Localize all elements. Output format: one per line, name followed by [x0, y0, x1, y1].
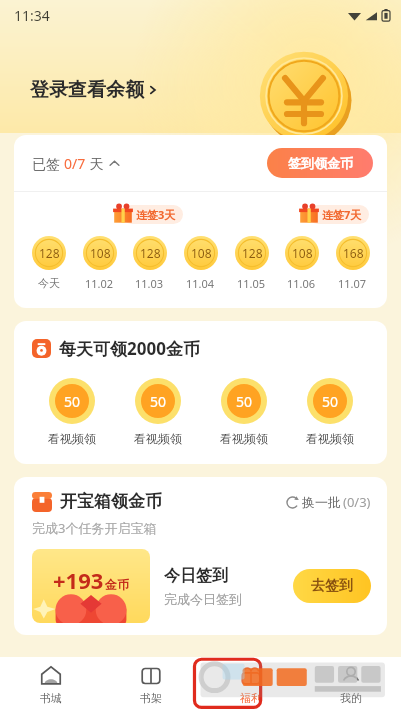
staticText: 我的: [340, 691, 362, 705]
staticText: 0/7: [64, 154, 86, 173]
staticText: 完成3个任务开启宝箱: [32, 519, 157, 537]
staticText: 看视频领: [134, 431, 182, 446]
button[interactable]: 128: [228, 236, 275, 291]
staticText: 每天可领2000金币: [59, 337, 200, 360]
button[interactable]: +193: [32, 549, 150, 623]
button[interactable]: 108: [278, 236, 325, 291]
staticText: 11.05: [237, 276, 266, 291]
button[interactable]: 福利: [201, 657, 301, 713]
staticText: 福利: [240, 691, 262, 705]
button[interactable]: 已签: [32, 154, 267, 173]
staticText: 完成今日签到: [164, 591, 242, 607]
staticText: 168: [343, 245, 364, 261]
staticText: 11.07: [338, 276, 367, 291]
button[interactable]: 去签到: [293, 569, 371, 603]
staticText: 书架: [140, 691, 162, 705]
staticText: 今天: [38, 276, 60, 290]
staticText: 50: [150, 392, 167, 411]
staticText: 11.04: [186, 276, 215, 291]
staticText: 看视频领: [48, 431, 96, 446]
staticText: 天: [86, 154, 104, 173]
staticText: 11.02: [85, 276, 114, 291]
staticText: 108: [90, 245, 111, 261]
staticText: 金币: [105, 577, 129, 592]
staticText: 登录查看余额: [30, 78, 144, 102]
staticText: 11.03: [135, 276, 164, 291]
button[interactable]: 108: [76, 236, 123, 291]
staticText: 已签: [32, 154, 64, 173]
button[interactable]: 我的: [301, 657, 401, 713]
button[interactable]: 书架: [101, 657, 201, 713]
button[interactable]: 50: [115, 378, 201, 446]
button[interactable]: 168: [329, 236, 376, 291]
staticText: 连签3天: [136, 207, 176, 222]
staticText: 去签到: [311, 577, 353, 595]
staticText: 50: [64, 392, 81, 411]
staticText: 看视频领: [220, 431, 268, 446]
staticText: 11:34: [14, 6, 50, 25]
staticText: 今日签到: [164, 566, 228, 586]
button[interactable]: 128: [126, 236, 173, 291]
staticText: 书城: [40, 691, 62, 705]
button[interactable]: 换一批: [286, 493, 371, 511]
button[interactable]: 书城: [0, 657, 101, 713]
staticText: 换一批: [302, 494, 341, 510]
staticText: (0/3): [343, 493, 371, 511]
button[interactable]: 登录查看余额: [30, 78, 159, 102]
staticText: 开宝箱领金币: [60, 491, 162, 512]
button[interactable]: 50: [28, 378, 115, 446]
staticText: 128: [242, 245, 263, 261]
staticText: 11.06: [287, 276, 316, 291]
staticText: 50: [322, 392, 339, 411]
button[interactable]: 128: [25, 236, 72, 290]
staticText: 签到领金币: [288, 155, 353, 171]
staticText: 看视频领: [306, 431, 354, 446]
button[interactable]: 50: [201, 378, 287, 446]
button[interactable]: 50: [287, 378, 373, 446]
staticText: 128: [39, 245, 60, 261]
staticText: +193: [53, 565, 104, 595]
staticText: 108: [191, 245, 212, 261]
button[interactable]: 108: [177, 236, 224, 291]
staticText: 连签7天: [322, 207, 362, 222]
staticText: 128: [140, 245, 161, 261]
button[interactable]: 签到领金币: [267, 148, 373, 178]
staticText: 108: [292, 245, 313, 261]
staticText: 50: [236, 392, 253, 411]
